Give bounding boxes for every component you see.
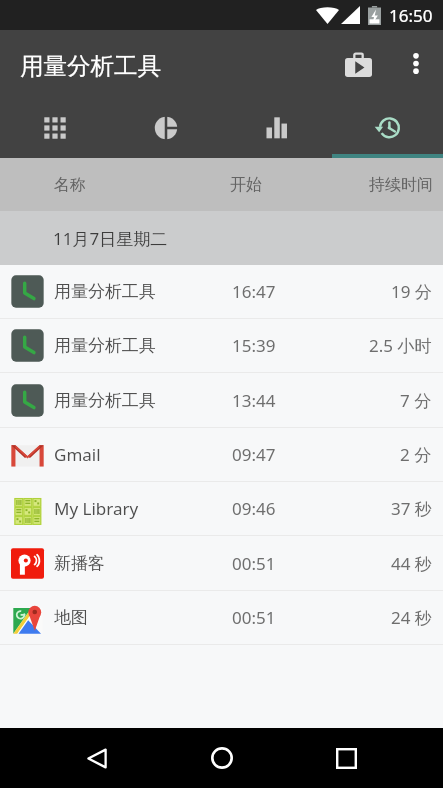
staticText: Gmail (54, 443, 101, 466)
staticText: 用量分析工具 (54, 390, 156, 411)
button[interactable]: 用量分析工具 (0, 265, 443, 319)
staticText: 16:50 (389, 4, 433, 27)
staticText: 7 分 (400, 389, 432, 412)
button[interactable]: 地图 (0, 591, 443, 645)
button[interactable]: 用量分析工具 (0, 373, 443, 428)
staticText: 00:51 (232, 606, 276, 629)
staticText: 19 分 (391, 280, 432, 303)
staticText: 24 秒 (391, 606, 432, 629)
button[interactable]: Bar chart (221, 96, 332, 158)
button[interactable]: Play Store (335, 41, 382, 88)
button[interactable]: 用量分析工具 (0, 319, 443, 373)
staticText: 持续时间 (369, 175, 433, 195)
staticText: 00:51 (232, 552, 276, 575)
staticText: 开始 (230, 175, 262, 195)
staticText: 13:44 (232, 389, 276, 412)
button[interactable]: Recents (319, 731, 373, 785)
staticText: 用量分析工具 (54, 281, 156, 302)
button[interactable]: Back (70, 731, 124, 785)
staticText: 用量分析工具 (54, 335, 156, 356)
button[interactable]: Pie chart (110, 96, 221, 158)
staticText: My Library (54, 497, 139, 520)
button[interactable]: Home (195, 731, 249, 785)
staticText: 09:46 (232, 497, 276, 520)
button[interactable]: Apps (0, 96, 110, 158)
staticText: 2 分 (400, 443, 432, 466)
button[interactable]: History (332, 96, 443, 158)
staticText: 2.5 小时 (369, 334, 432, 357)
staticText: 11月7日星期二 (53, 227, 168, 250)
button[interactable]: Gmail (0, 428, 443, 482)
staticText: 名称 (54, 175, 86, 195)
staticText: 16:47 (232, 280, 276, 303)
button[interactable]: More options (394, 41, 438, 85)
staticText: 44 秒 (391, 552, 432, 575)
staticText: 地图 (54, 607, 88, 628)
staticText: 09:47 (232, 443, 276, 466)
button[interactable]: My Library (0, 482, 443, 536)
staticText: 新播客 (54, 553, 105, 574)
staticText: 37 秒 (391, 497, 432, 520)
staticText: 用量分析工具 (20, 51, 161, 81)
button[interactable]: 新播客 (0, 536, 443, 591)
staticText: 15:39 (232, 334, 276, 357)
